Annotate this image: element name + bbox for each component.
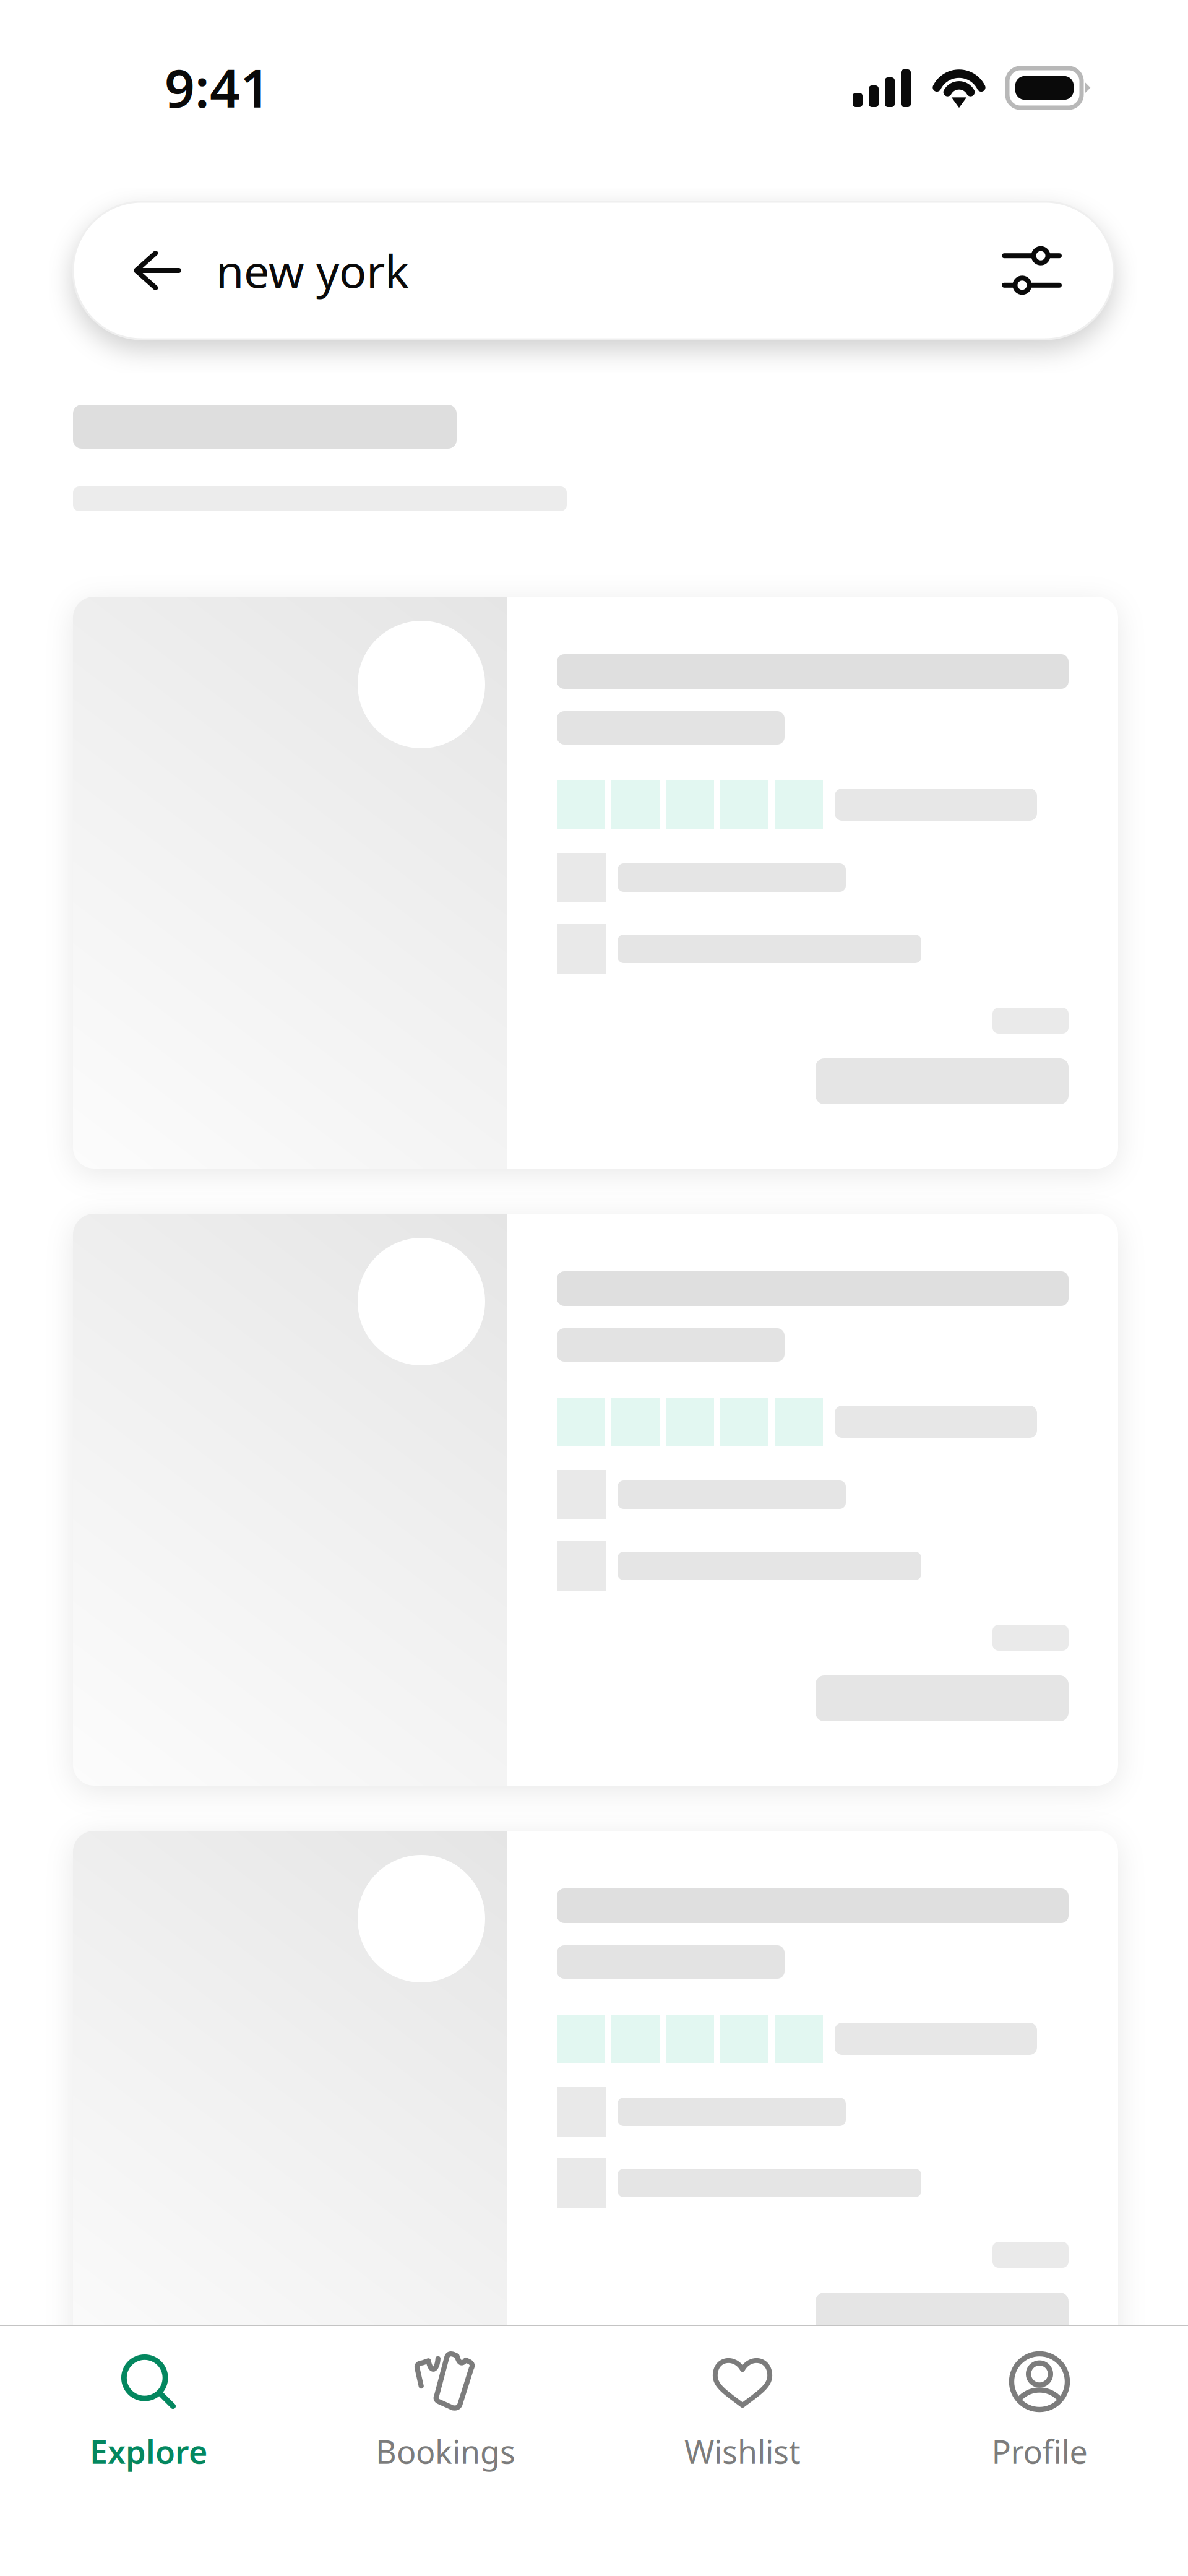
button[interactable]: Bookings [297,2326,594,2498]
staticText: new york [216,240,409,301]
staticText: Bookings [376,2430,515,2473]
staticText: Wishlist [684,2430,801,2473]
button[interactable]: Explore [0,2326,297,2498]
staticText: 9:41 [165,52,270,122]
button[interactable]: Back [119,224,196,317]
button[interactable] [73,597,1118,1169]
staticText: Explore [90,2430,207,2473]
button[interactable]: Wishlist [594,2326,891,2498]
button[interactable]: Filters [993,224,1070,317]
staticText: Profile [992,2430,1087,2473]
button[interactable]: Profile [891,2326,1188,2498]
button[interactable] [73,1831,1118,2403]
button[interactable] [73,1214,1118,1786]
button[interactable]: new york [73,202,1114,339]
